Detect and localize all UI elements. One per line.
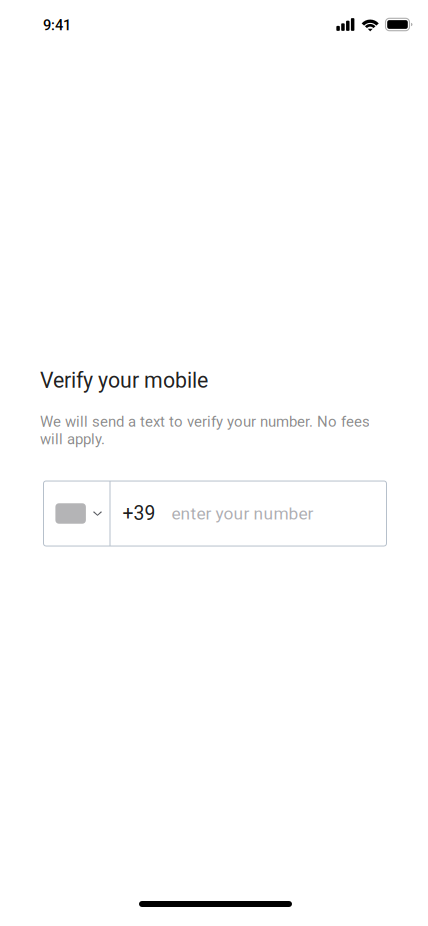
staticText: We will send a text to verify your numbe… [40, 413, 370, 448]
staticText: +39 [122, 502, 155, 525]
button[interactable]: Enter your phone number [171, 481, 386, 546]
staticText: 9:41 [43, 17, 71, 34]
staticText: Verify your mobile [40, 368, 208, 393]
staticText: enter your number [171, 503, 313, 524]
button[interactable]: Select country code [43, 481, 109, 546]
